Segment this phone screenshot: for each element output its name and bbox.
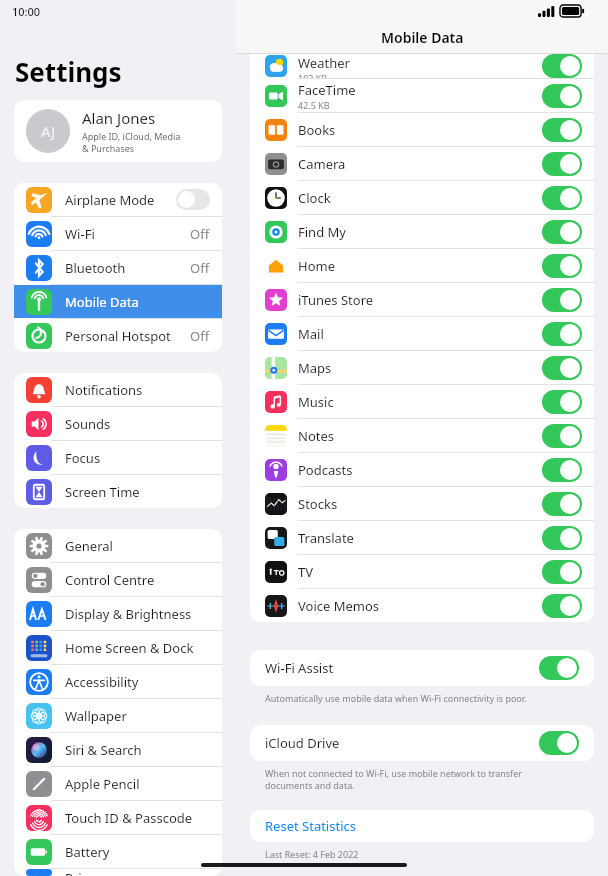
button[interactable]: Notes: [250, 419, 594, 452]
staticText: FaceTime: [298, 81, 356, 99]
button[interactable]: Toggle: [542, 186, 582, 210]
button[interactable]: Personal Hotspot: [14, 319, 222, 352]
button[interactable]: Toggle: [539, 656, 579, 680]
button[interactable]: Battery: [14, 835, 222, 868]
staticText: Alan Jones: [82, 108, 156, 128]
button[interactable]: Wi-Fi: [14, 217, 222, 250]
staticText: Apple ID, iCloud, Media: [82, 130, 181, 142]
staticText: Find My: [298, 223, 346, 241]
staticText: documents and data.: [265, 779, 355, 791]
button[interactable]: iTunes Store: [250, 283, 594, 316]
button[interactable]: Toggle: [542, 526, 582, 550]
button[interactable]: Airplane Mode: [14, 183, 222, 216]
staticText: & Purchases: [82, 142, 135, 154]
staticText: 10:00: [12, 4, 41, 19]
button[interactable]: Podcasts: [250, 453, 594, 486]
staticText: Control Centre: [65, 571, 155, 589]
button[interactable]: Toggle: [542, 458, 582, 482]
button[interactable]: Apple Pencil: [14, 767, 222, 800]
button[interactable]: Screen Time: [14, 475, 222, 508]
button[interactable]: Focus: [14, 441, 222, 474]
button[interactable]: Mobile Data: [14, 285, 222, 318]
button[interactable]: Toggle: [542, 152, 582, 176]
staticText: When not connected to Wi-Fi, use mobile …: [265, 767, 523, 779]
button[interactable]: Toggle: [542, 390, 582, 414]
button[interactable]: General: [14, 529, 222, 562]
button[interactable]: Wi-Fi Assist: [250, 650, 594, 686]
button[interactable]: Toggle: [542, 594, 582, 618]
button[interactable]: Notifications: [14, 373, 222, 406]
staticText: Siri & Search: [65, 741, 142, 759]
staticText: Touch ID & Passcode: [65, 809, 193, 827]
button[interactable]: Toggle: [542, 84, 582, 108]
button[interactable]: AJ: [14, 100, 222, 162]
staticText: TV: [298, 563, 314, 581]
button[interactable]: Accessibility: [14, 665, 222, 698]
staticText: Screen Time: [65, 483, 140, 501]
staticText: Focus: [65, 449, 101, 467]
button[interactable]: Display & Brightness: [14, 597, 222, 630]
staticText: Mobile Data: [381, 28, 464, 47]
staticText: Clock: [298, 189, 331, 207]
staticText: Accessibility: [65, 673, 139, 691]
button[interactable]: Sounds: [14, 407, 222, 440]
button[interactable]: FaceTime: [250, 79, 594, 112]
staticText: Personal Hotspot: [65, 327, 171, 345]
button[interactable]: Books: [250, 113, 594, 146]
button[interactable]: Toggle: [542, 288, 582, 312]
staticText: Notes: [298, 427, 334, 445]
button[interactable]: Toggle: [542, 424, 582, 448]
button[interactable]: Find My: [250, 215, 594, 248]
button[interactable]: Toggle: [542, 560, 582, 584]
staticText: Battery: [65, 843, 110, 861]
staticText: Privacy: [65, 869, 109, 876]
staticText: 103 KB: [298, 72, 328, 78]
button[interactable]: Camera: [250, 147, 594, 180]
staticText: Off: [190, 225, 210, 243]
button[interactable]: Touch ID & Passcode: [14, 801, 222, 834]
staticText: Wallpaper: [65, 707, 127, 725]
button[interactable]: Home: [250, 249, 594, 282]
button[interactable]: Home Screen & Dock: [14, 631, 222, 664]
button[interactable]: Translate: [250, 521, 594, 554]
button[interactable]: Reset Statistics: [250, 810, 594, 842]
staticText: Maps: [298, 359, 332, 377]
staticText: iCloud Drive: [265, 734, 340, 752]
staticText: Podcasts: [298, 461, 353, 479]
button[interactable]: iCloud Drive: [250, 725, 594, 761]
button[interactable]: Toggle: [542, 220, 582, 244]
button[interactable]: Control Centre: [14, 563, 222, 596]
button[interactable]: Bluetooth: [14, 251, 222, 284]
button[interactable]: Toggle: [542, 118, 582, 142]
button[interactable]: Wallpaper: [14, 699, 222, 732]
button[interactable]: TV: [250, 555, 594, 588]
button[interactable]: Toggle: [542, 54, 582, 78]
staticText: Wi-Fi: [65, 225, 95, 243]
staticText: Airplane Mode: [65, 191, 155, 209]
button[interactable]: Music: [250, 385, 594, 418]
button[interactable]: Toggle: [539, 731, 579, 755]
staticText: Reset Statistics: [265, 817, 356, 835]
staticText: AJ: [41, 121, 56, 141]
staticText: Notifications: [65, 381, 143, 399]
button[interactable]: Maps: [250, 351, 594, 384]
button[interactable]: Voice Memos: [250, 589, 594, 622]
button[interactable]: Stocks: [250, 487, 594, 520]
button[interactable]: Toggle: [542, 492, 582, 516]
button[interactable]: Toggle: [542, 322, 582, 346]
button[interactable]: Toggle: [542, 254, 582, 278]
button[interactable]: Clock: [250, 181, 594, 214]
staticText: Automatically use mobile data when Wi-Fi…: [265, 692, 527, 704]
staticText: Camera: [298, 155, 346, 173]
staticText: Display & Brightness: [65, 605, 192, 623]
staticText: Last Reset: 4 Feb 2022: [265, 848, 359, 860]
staticText: Wi-Fi Assist: [265, 659, 334, 677]
button[interactable]: Mail: [250, 317, 594, 350]
button[interactable]: Privacy: [14, 869, 222, 876]
staticText: Stocks: [298, 495, 338, 513]
staticText: Mail: [298, 325, 324, 343]
staticText: Bluetooth: [65, 259, 126, 277]
button[interactable]: Toggle: [542, 356, 582, 380]
button[interactable]: Siri & Search: [14, 733, 222, 766]
staticText: Apple Pencil: [65, 775, 140, 793]
